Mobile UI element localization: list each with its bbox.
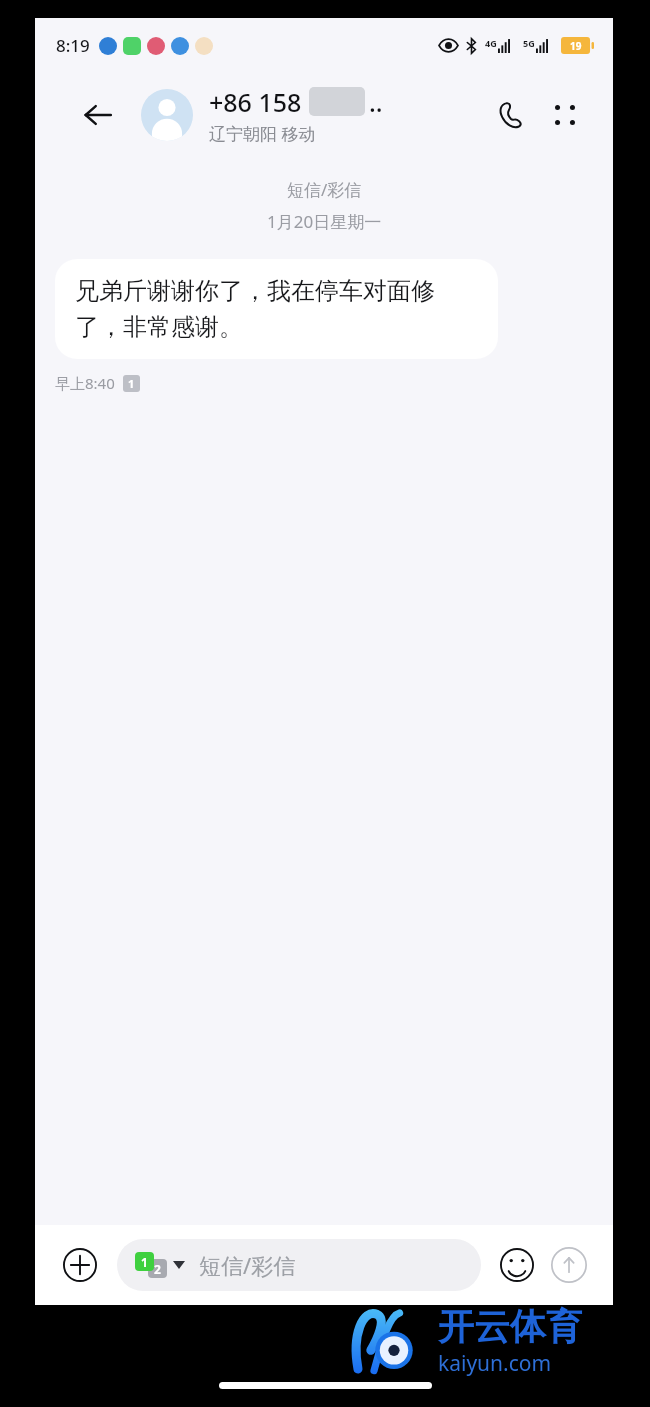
button[interactable]: 兄弟斤谢谢你了，我在停车对面修了，非常感谢。: [55, 259, 498, 359]
staticText: 1: [141, 1254, 148, 1270]
button[interactable]: Back: [75, 92, 121, 138]
staticText: 短信/彩信: [199, 1250, 296, 1280]
button[interactable]: Call: [483, 87, 539, 143]
staticText: 1: [128, 376, 135, 391]
button[interactable]: Add attachment: [55, 1240, 105, 1290]
staticText: 短信/彩信: [287, 178, 362, 201]
button[interactable]: Send: [545, 1241, 593, 1289]
staticText: 开云体育: [438, 1304, 582, 1349]
staticText: kaiyun.com: [438, 1349, 552, 1378]
staticText: 辽宁朝阳 移动: [209, 122, 316, 145]
staticText: 19: [570, 39, 582, 53]
staticText: 4G: [485, 37, 497, 49]
staticText: 5G: [523, 37, 535, 49]
button[interactable]: Contact avatar: [141, 89, 193, 141]
staticText: 早上8:40: [55, 373, 115, 393]
button[interactable]: 2: [117, 1239, 481, 1291]
staticText: 2: [154, 1261, 161, 1277]
staticText: +86 158: [209, 85, 302, 119]
staticText: ..: [369, 85, 383, 119]
staticText: 1月20日星期一: [267, 210, 382, 233]
button[interactable]: More options: [539, 89, 591, 141]
button[interactable]: Emoji: [493, 1241, 541, 1289]
staticText: 8:19: [56, 34, 90, 57]
staticText: 兄弟斤谢谢你了，我在停车对面修了，非常感谢。: [75, 276, 478, 342]
